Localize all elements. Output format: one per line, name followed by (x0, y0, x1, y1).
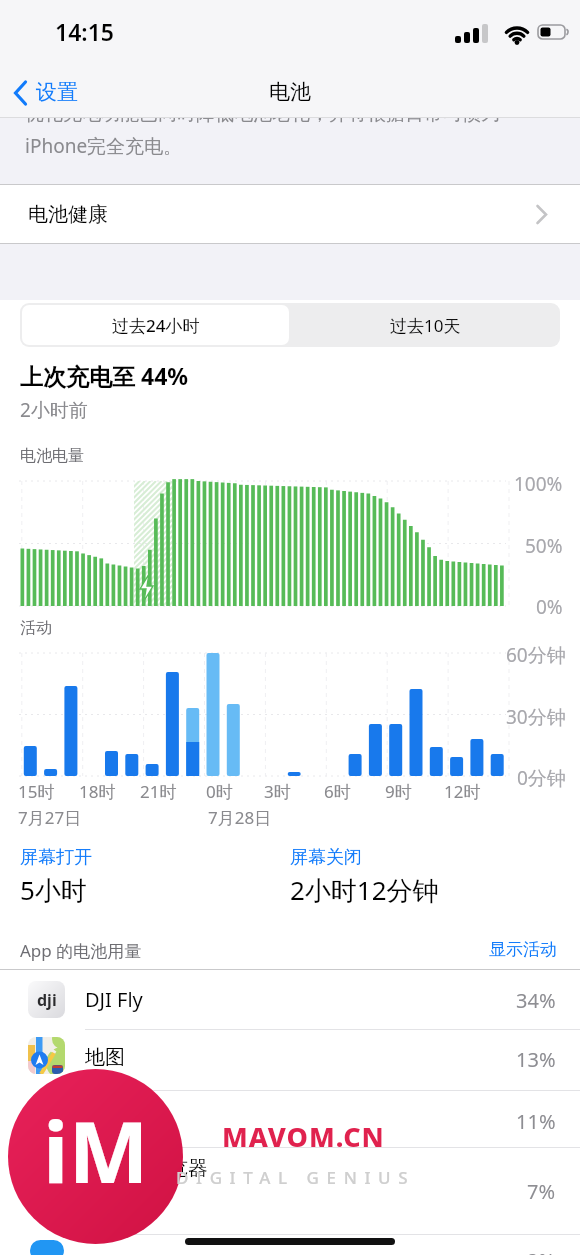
staticText: 18时 (79, 780, 116, 803)
staticText: 2小时12分钟 (290, 872, 439, 908)
staticText: 100% (514, 471, 563, 497)
staticText: DJI Fly (85, 986, 143, 1013)
staticText: 0% (536, 594, 563, 620)
staticText: 上次充电至 44% (20, 360, 189, 391)
staticText: 50% (525, 533, 563, 559)
staticText: 7月27日 (18, 806, 82, 829)
staticText: 3时 (264, 780, 291, 803)
staticText: App 的电池用量 (20, 939, 142, 962)
staticText: 6时 (324, 780, 351, 803)
button[interactable]: 电池健康 (0, 185, 580, 243)
button[interactable]: 11% (0, 1090, 580, 1147)
button[interactable]: 设置 (8, 74, 98, 112)
staticText: 电池电量 (20, 446, 84, 466)
staticText: 7月28日 (208, 806, 272, 829)
button[interactable]: dji (0, 970, 580, 1029)
staticText: MAVOM.CN (222, 1118, 385, 1155)
staticText: 0分钟 (517, 765, 566, 791)
staticText: 14:15 (55, 16, 114, 47)
staticText: DIGITAL GENIUS (176, 1166, 416, 1189)
staticText: 21时 (140, 780, 177, 803)
staticText: 设置 (36, 79, 78, 105)
staticText: 13% (516, 1046, 556, 1073)
staticText: 5小时 (20, 872, 87, 908)
staticText: 0时 (206, 780, 233, 803)
button[interactable]: 过去10天 (291, 303, 560, 347)
staticText: 屏幕关闭 (290, 846, 362, 869)
staticText: dji (37, 989, 57, 1011)
staticText: 电池 (269, 79, 311, 105)
staticText: 12时 (444, 780, 481, 803)
staticText: 屏幕打开 (20, 846, 92, 869)
staticText: 显示活动 (489, 939, 557, 960)
staticText: 15时 (18, 780, 55, 803)
staticText: 览器 (168, 1156, 208, 1181)
staticText: 7% (527, 1178, 556, 1205)
staticText: 2小时前 (20, 397, 88, 423)
button[interactable]: 过去24小时 (22, 305, 289, 345)
button[interactable]: 地图 (0, 1029, 580, 1090)
button[interactable]: 显示活动 (447, 939, 557, 960)
staticText: 过去10天 (390, 314, 461, 337)
staticText: 地图 (85, 1045, 125, 1070)
staticText: 11% (516, 1108, 556, 1135)
staticText: 优化充电功能已同时降低电池老化，并将根据日常习惯为 (25, 118, 500, 126)
staticText: 30分钟 (506, 704, 566, 730)
staticText: 60分钟 (506, 642, 566, 668)
staticText: 过去24小时 (112, 314, 200, 337)
staticText: 2% (527, 1247, 556, 1255)
button[interactable]: 览器 (0, 1147, 580, 1234)
button[interactable]: 2% (0, 1234, 580, 1255)
staticText: 电池健康 (28, 202, 108, 227)
staticText: 34% (516, 987, 556, 1014)
staticText: 9时 (385, 780, 412, 803)
staticText: iM (43, 1092, 149, 1208)
staticText: 活动 (20, 618, 52, 638)
staticText: iPhone完全充电。 (25, 133, 183, 159)
